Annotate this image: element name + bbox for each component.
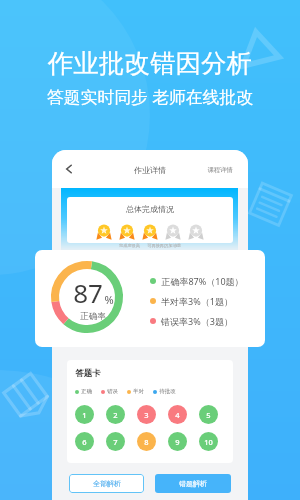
staticText: 1 (82, 410, 87, 420)
staticText: 4 (175, 410, 180, 420)
button[interactable]: 课程详情 (207, 166, 233, 174)
button[interactable]: 7 (106, 432, 125, 451)
staticText: 错题解析 (179, 479, 207, 488)
staticText: % (104, 292, 114, 307)
staticText: 答题实时同步 老师在线批改 (47, 85, 253, 108)
staticText: 全部解析 (93, 479, 121, 488)
staticText: 6 (82, 437, 87, 447)
staticText: 正确 (81, 388, 92, 395)
button[interactable]: 9 (168, 432, 187, 451)
staticText: 作业详情 (134, 165, 166, 175)
staticText: 5 (206, 410, 211, 420)
staticText: 正确率87%（10题） (161, 275, 244, 287)
staticText: 答题卡 (75, 368, 101, 379)
staticText: 可再接再厉加油哦 (147, 243, 181, 248)
button[interactable]: 1 (75, 405, 94, 424)
button[interactable]: 10 (199, 432, 218, 451)
button[interactable]: 2 (106, 405, 125, 424)
button[interactable]: 6 (75, 432, 94, 451)
staticText: 半对率3%（1题） (161, 295, 233, 307)
staticText: 错误率3%（3题） (161, 315, 233, 327)
button[interactable]: 3 (137, 405, 156, 424)
staticText: 87 (73, 275, 103, 310)
staticText: 2 (113, 410, 118, 420)
button[interactable]: 4 (168, 405, 187, 424)
button[interactable]: 错题解析 (155, 474, 231, 493)
staticText: 3 (144, 410, 149, 420)
staticText: 8 (144, 437, 149, 447)
button[interactable]: 8 (137, 432, 156, 451)
staticText: 错误 (107, 388, 118, 395)
staticText: 7 (113, 437, 118, 447)
staticText: 半对 (133, 388, 144, 395)
staticText: 10 (204, 437, 213, 447)
button[interactable]: 全部解析 (69, 474, 144, 493)
staticText: 待批改 (159, 388, 176, 395)
button[interactable]: Back (62, 162, 76, 176)
staticText: 完成度很高 (119, 243, 140, 248)
staticText: 正确率 (80, 311, 106, 322)
staticText: 作业批改错因分析 (48, 47, 252, 79)
staticText: 总体完成情况 (126, 204, 174, 214)
staticText: 9 (175, 437, 180, 447)
button[interactable]: 5 (199, 405, 218, 424)
